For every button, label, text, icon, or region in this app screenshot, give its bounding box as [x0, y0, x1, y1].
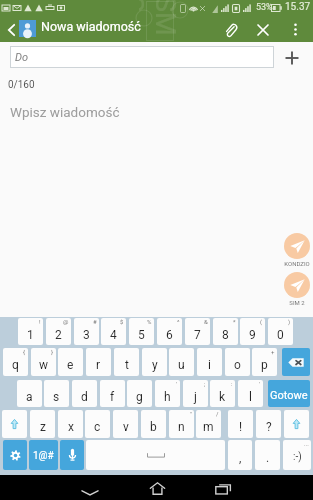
staticText: h — [164, 390, 171, 404]
staticText: } — [51, 348, 54, 355]
staticText: KONDZIO — [284, 260, 310, 267]
staticText: r — [96, 358, 101, 372]
staticText: ( — [260, 318, 263, 325]
staticText: 1 — [27, 328, 34, 342]
button[interactable]: f — [100, 380, 125, 407]
button[interactable]: Send via KONDZIO — [284, 233, 310, 259]
button[interactable]: 8 — [213, 318, 238, 345]
staticText: ! — [39, 318, 41, 325]
staticText: Gotowe — [270, 389, 308, 402]
staticText: t — [125, 358, 129, 372]
staticText: q — [12, 358, 19, 372]
button[interactable]: Gotowe — [268, 380, 310, 407]
button[interactable]: Do — [10, 46, 274, 68]
button[interactable]: 4 — [101, 318, 126, 345]
button[interactable]: x — [58, 410, 83, 438]
button[interactable]: 7 — [185, 318, 210, 345]
button[interactable]: 2 — [46, 318, 71, 345]
staticText: 8 — [222, 328, 229, 342]
button[interactable]: 1@# — [29, 440, 58, 470]
staticText: d — [81, 390, 88, 404]
button[interactable]: a — [17, 380, 42, 407]
staticText: n — [178, 420, 185, 434]
button[interactable]: h — [155, 380, 180, 407]
button[interactable]: o — [225, 348, 250, 376]
staticText: 0 — [277, 328, 284, 342]
button[interactable]: w — [31, 348, 56, 376]
button[interactable]: y — [142, 348, 167, 376]
button[interactable] — [60, 440, 84, 470]
staticText: e — [67, 358, 74, 372]
button[interactable]: e — [58, 348, 83, 376]
button[interactable]: ? — [256, 410, 281, 438]
staticText: 4 — [110, 328, 117, 342]
button[interactable]: . — [255, 440, 280, 470]
button[interactable]: 6 — [157, 318, 182, 345]
button[interactable]: s — [44, 380, 69, 407]
button[interactable]: t — [114, 348, 139, 376]
button[interactable]: 1 — [18, 318, 43, 345]
staticText: ) — [288, 318, 291, 325]
staticText: Wpisz wiadomość — [10, 104, 120, 120]
staticText: * — [233, 318, 236, 325]
button[interactable]: b — [141, 410, 166, 438]
button[interactable]: ! — [228, 410, 253, 438]
button[interactable]: 9 — [240, 318, 265, 345]
button[interactable]: z — [30, 410, 55, 438]
staticText: w — [39, 358, 49, 372]
button[interactable]: n — [169, 410, 194, 438]
staticText: 6 — [166, 328, 173, 342]
button[interactable]: i — [197, 348, 222, 376]
button[interactable] — [284, 410, 309, 438]
staticText: a — [26, 390, 33, 404]
button[interactable]: m — [196, 410, 221, 438]
button[interactable]: More options — [284, 17, 306, 42]
staticText: ' — [259, 380, 261, 387]
button[interactable] — [86, 440, 225, 470]
staticText: 5 — [138, 328, 145, 342]
button[interactable] — [3, 440, 27, 470]
button[interactable]: j — [183, 380, 208, 407]
button[interactable]: p — [252, 348, 277, 376]
staticText: ; — [204, 380, 206, 387]
staticText: 1@# — [33, 450, 54, 462]
button[interactable]: Back — [72, 477, 108, 499]
staticText: , — [239, 451, 242, 465]
button[interactable]: v — [113, 410, 138, 438]
staticText: Nowa wiadomość — [41, 19, 141, 34]
button[interactable]: Add recipient — [278, 44, 306, 72]
staticText: l — [249, 390, 252, 404]
button[interactable]: Attach file — [218, 17, 243, 42]
button[interactable]: d — [72, 380, 97, 407]
staticText: SMS — [139, 0, 181, 36]
button[interactable]: Send via SIM 2 — [284, 272, 310, 298]
button[interactable]: :-) — [283, 440, 311, 470]
button[interactable]: g — [127, 380, 152, 407]
staticText: SIM 2 — [289, 299, 305, 306]
button[interactable]: r — [86, 348, 111, 376]
staticText: 53% — [256, 2, 273, 13]
button[interactable]: l — [238, 380, 263, 407]
staticText: b — [150, 420, 157, 434]
button[interactable]: u — [169, 348, 194, 376]
button[interactable]: 5 — [129, 318, 154, 345]
button[interactable]: Recent apps — [205, 476, 241, 498]
button[interactable] — [282, 348, 310, 376]
button[interactable]: 0 — [268, 318, 293, 345]
staticText: :-) — [293, 451, 302, 463]
staticText: s — [53, 390, 60, 404]
staticText: ? — [266, 420, 272, 434]
staticText: . — [266, 451, 270, 465]
button[interactable]: c — [85, 410, 110, 438]
staticText: 3 — [83, 328, 90, 342]
button[interactable] — [2, 410, 27, 438]
button[interactable]: Close — [250, 17, 275, 42]
button[interactable]: , — [228, 440, 252, 470]
button[interactable]: Back — [2, 17, 20, 42]
button[interactable]: q — [3, 348, 28, 376]
button[interactable]: 3 — [74, 318, 99, 345]
staticText: 15.37 — [285, 1, 311, 13]
button[interactable]: Home — [139, 476, 175, 498]
button[interactable]: k — [210, 380, 235, 407]
staticText: ! — [239, 420, 243, 434]
